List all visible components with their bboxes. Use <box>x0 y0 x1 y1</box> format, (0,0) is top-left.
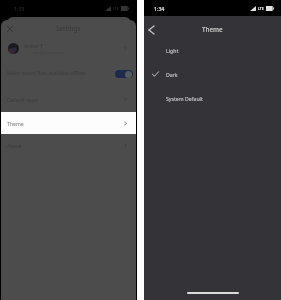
button[interactable]: Back <box>145 23 158 36</box>
staticText: Dark <box>166 71 178 78</box>
staticText: Settings <box>56 24 81 33</box>
staticText: Default apps <box>7 96 38 103</box>
staticText: Theme <box>7 120 24 127</box>
staticText: LTE <box>258 6 264 11</box>
staticText: LTE <box>113 6 119 11</box>
button[interactable]: Dark <box>144 62 281 86</box>
staticText: Theme <box>202 25 223 34</box>
staticText: 1:34 <box>154 5 165 12</box>
staticText: 1:33 <box>14 5 25 12</box>
button[interactable]: Close <box>3 22 16 35</box>
button[interactable]: Offline files toggle <box>115 70 133 78</box>
button[interactable]: Ankur T <box>1 37 136 60</box>
staticText: Light <box>166 47 179 54</box>
staticText: System Default <box>166 95 203 102</box>
staticText: About <box>7 142 22 149</box>
button[interactable]: Light <box>144 38 281 62</box>
button[interactable]: System Default <box>144 86 281 110</box>
button[interactable]: Theme <box>1 112 136 134</box>
button[interactable]: Make recent files available offline <box>1 60 136 87</box>
staticText: Ankur T <box>24 42 43 49</box>
staticText: Make recent files available offline <box>7 70 86 77</box>
